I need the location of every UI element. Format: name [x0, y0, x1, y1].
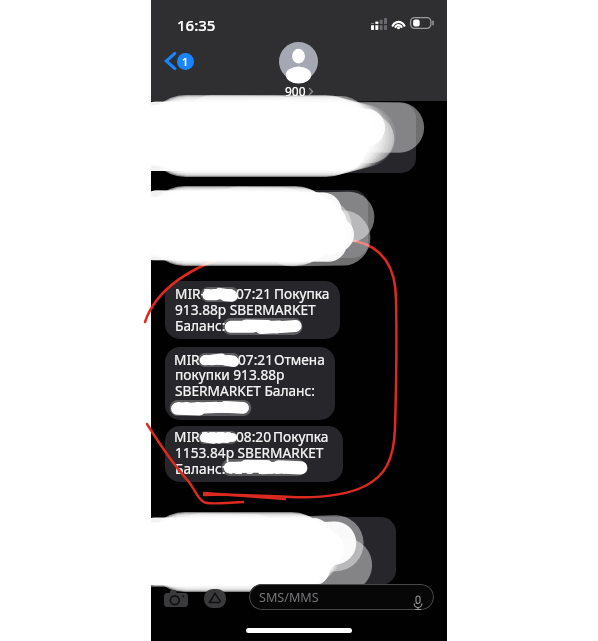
staticText: Баланс: — [175, 459, 226, 478]
button[interactable]: App Store — [202, 586, 228, 610]
staticText: 07:21 — [236, 284, 271, 303]
staticText: 5678 — [202, 350, 234, 369]
staticText: 5678 — [201, 427, 233, 446]
staticText: Баланс: — [175, 316, 226, 335]
staticText: 07:21 — [238, 350, 273, 369]
staticText: SBERMARKET Баланс: — [175, 381, 315, 400]
button[interactable]: SMS/MMS — [249, 584, 434, 610]
staticText: 08:20 — [236, 427, 271, 446]
button[interactable]: MIR- — [165, 281, 340, 339]
staticText: 12 345.67 — [227, 459, 290, 478]
button[interactable]: Back to conversations — [165, 52, 194, 70]
staticText: 913.88р SBERMARKET — [175, 300, 316, 319]
staticText: MIR- — [174, 427, 204, 446]
staticText: Отмена — [274, 350, 325, 369]
staticText: 12 345.67 — [175, 397, 238, 416]
staticText: MIR- — [174, 350, 204, 369]
staticText: MIR- — [175, 284, 205, 303]
staticText: 1 — [182, 54, 189, 69]
staticText: 5678 — [203, 284, 235, 303]
button[interactable]: MIR- — [165, 347, 335, 420]
button[interactable]: MIR- — [164, 103, 416, 173]
button[interactable]: Camera — [162, 586, 190, 610]
staticText: 12 345.67 — [227, 316, 290, 335]
button[interactable]: MIR- — [164, 517, 396, 585]
staticText: Покупка — [273, 427, 329, 446]
staticText: Покупка — [274, 284, 330, 303]
button[interactable]: MIR- — [165, 426, 343, 482]
button[interactable]: MIR- — [164, 190, 368, 258]
button[interactable]: 900 — [279, 42, 318, 99]
staticText: 1153.84р SBERMARKET — [175, 443, 324, 462]
staticText: 16:35 — [177, 15, 216, 35]
staticText: покупки 913.88р — [175, 365, 285, 384]
staticText: SMS/MMS — [259, 589, 319, 606]
staticText: 900 — [285, 83, 306, 99]
